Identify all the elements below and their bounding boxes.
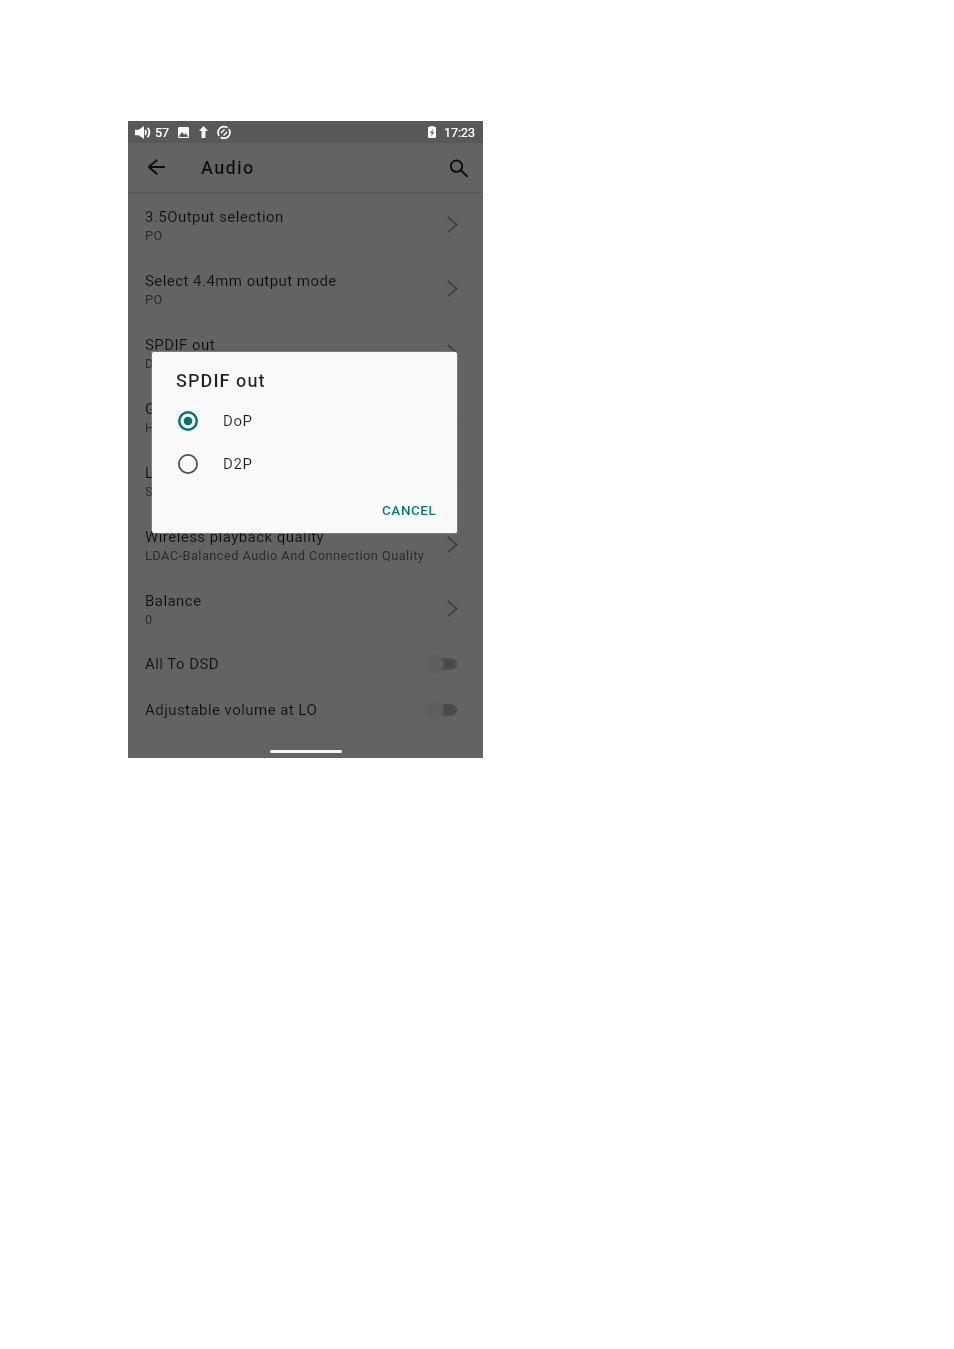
staticText: SPDIF out <box>145 336 216 354</box>
button[interactable]: Gain <box>128 385 483 449</box>
button[interactable]: 3.5Output selection <box>128 193 483 257</box>
button[interactable]: DoP <box>152 399 457 442</box>
staticText: D2P <box>223 455 253 473</box>
button[interactable]: Search <box>439 148 479 188</box>
staticText: CANCEL <box>382 502 437 518</box>
staticText: 3.5Output selection <box>145 208 284 226</box>
button[interactable]: Adjustable volume at LO <box>128 687 483 733</box>
staticText: PO <box>145 292 163 307</box>
button[interactable]: Select 4.4mm output mode <box>128 257 483 321</box>
staticText: DoP <box>145 356 171 371</box>
staticText: DoP <box>223 412 253 430</box>
staticText: Wireless playback quality <box>145 528 325 546</box>
staticText: PO <box>145 228 163 243</box>
button[interactable]: Low pass filter <box>128 449 483 513</box>
staticText: 0 <box>145 612 153 627</box>
staticText: 17:23 <box>444 125 476 140</box>
button[interactable]: Balance <box>128 577 483 641</box>
staticText: Sharp roll off <box>145 484 225 499</box>
staticText: SPDIF out <box>176 370 266 391</box>
staticText: All To DSD <box>145 655 220 673</box>
staticText: 57 <box>155 125 170 140</box>
button[interactable]: Navigate up <box>136 148 176 188</box>
button[interactable]: Toggle switch, off <box>427 654 457 674</box>
staticText: Low pass filter <box>145 464 250 482</box>
staticText: Audio <box>201 157 255 178</box>
button[interactable]: SPDIF out <box>128 321 483 385</box>
button[interactable]: CANCEL <box>374 496 445 524</box>
staticText: Gain <box>145 400 178 418</box>
button[interactable]: Toggle switch, off <box>427 700 457 720</box>
button[interactable]: D2P <box>152 442 457 485</box>
button[interactable]: All To DSD <box>128 641 483 687</box>
staticText: Select 4.4mm output mode <box>145 272 337 290</box>
button[interactable]: Wireless playback quality <box>128 513 483 577</box>
staticText: High <box>145 420 174 435</box>
staticText: Adjustable volume at LO <box>145 701 318 719</box>
staticText: Balance <box>145 592 202 610</box>
staticText: LDAC-Balanced Audio And Connection Quali… <box>145 548 425 563</box>
